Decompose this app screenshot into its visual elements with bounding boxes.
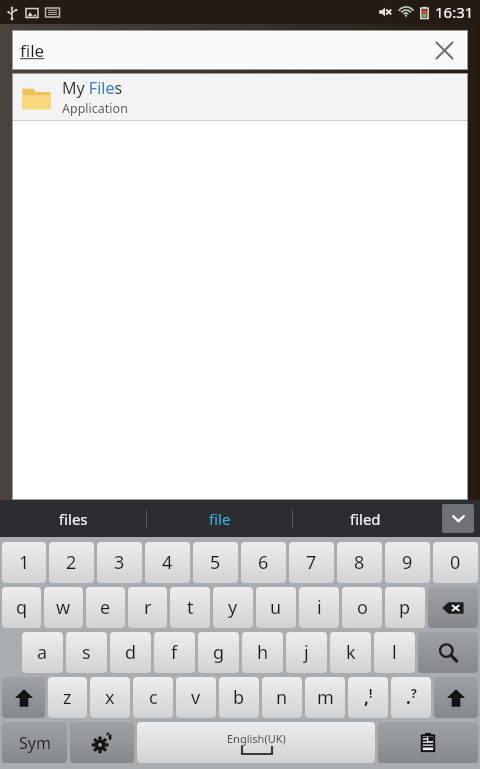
staticText: t: [187, 595, 194, 620]
staticText: m: [317, 685, 334, 710]
button[interactable]: t: [170, 585, 210, 630]
staticText: !: [369, 685, 373, 701]
staticText: o: [357, 595, 368, 620]
button[interactable]: Sym: [2, 720, 67, 765]
button[interactable]: 1: [2, 540, 46, 585]
button[interactable]: f: [154, 630, 195, 675]
staticText: 4: [162, 550, 173, 575]
staticText: w: [56, 595, 71, 620]
button[interactable]: n: [262, 675, 302, 720]
button[interactable]: x: [90, 675, 130, 720]
staticText: 9: [402, 550, 413, 575]
staticText: 7: [306, 550, 317, 575]
staticText: k: [346, 640, 356, 665]
staticText: ,: [364, 686, 369, 709]
staticText: file: [209, 509, 231, 529]
staticText: s: [82, 640, 91, 665]
button[interactable]: ,: [348, 675, 388, 720]
button[interactable]: o: [342, 585, 382, 630]
button[interactable]: 4: [145, 540, 190, 585]
staticText: z: [63, 685, 72, 710]
button[interactable]: i: [299, 585, 339, 630]
button[interactable]: Expand suggestions: [442, 504, 474, 533]
staticText: f: [171, 640, 178, 665]
staticText: ?: [411, 685, 417, 701]
button[interactable]: My Files: [13, 74, 467, 120]
button[interactable]: r: [128, 585, 167, 630]
button[interactable]: Search: [418, 630, 478, 675]
button[interactable]: 2: [49, 540, 94, 585]
staticText: a: [37, 640, 48, 665]
staticText: n: [276, 685, 288, 710]
staticText: My Files: [62, 77, 123, 99]
staticText: files: [59, 509, 88, 529]
button[interactable]: Shift: [2, 675, 45, 720]
staticText: file: [20, 39, 45, 62]
staticText: Application: [62, 100, 128, 117]
button[interactable]: z: [48, 675, 87, 720]
staticText: 0: [450, 550, 461, 575]
button[interactable]: g: [198, 630, 239, 675]
button[interactable]: a: [22, 630, 63, 675]
button[interactable]: Clipboard: [378, 720, 478, 765]
button[interactable]: file: [147, 500, 292, 537]
button[interactable]: l: [374, 630, 415, 675]
button[interactable]: y: [213, 585, 253, 630]
staticText: c: [149, 685, 158, 710]
staticText: r: [144, 595, 152, 620]
button[interactable]: c: [133, 675, 173, 720]
button[interactable]: e: [86, 585, 125, 630]
staticText: Sym: [19, 732, 51, 754]
staticText: l: [392, 640, 397, 665]
button[interactable]: English(UK): [137, 720, 375, 765]
staticText: 16:31: [435, 2, 474, 22]
staticText: h: [257, 640, 269, 665]
button[interactable]: 8: [337, 540, 382, 585]
button[interactable]: b: [219, 675, 259, 720]
button[interactable]: u: [256, 585, 296, 630]
button[interactable]: Shift: [434, 675, 478, 720]
staticText: 3: [114, 550, 125, 575]
button[interactable]: m: [305, 675, 345, 720]
staticText: g: [213, 640, 225, 665]
button[interactable]: p: [385, 585, 425, 630]
button[interactable]: 0: [433, 540, 478, 585]
button[interactable]: v: [176, 675, 216, 720]
button[interactable]: Clear search: [429, 35, 459, 65]
button[interactable]: j: [286, 630, 327, 675]
staticText: u: [270, 595, 282, 620]
button[interactable]: 6: [241, 540, 286, 585]
staticText: 8: [354, 550, 365, 575]
button[interactable]: filed: [293, 500, 438, 537]
button[interactable]: 9: [385, 540, 430, 585]
staticText: filed: [350, 509, 381, 529]
button[interactable]: q: [2, 585, 41, 630]
staticText: 5: [210, 550, 221, 575]
button[interactable]: Backspace: [428, 585, 478, 630]
staticText: d: [125, 640, 137, 665]
staticText: i: [317, 595, 322, 620]
staticText: x: [105, 685, 115, 710]
staticText: 6: [258, 550, 269, 575]
button[interactable]: file: [13, 31, 467, 69]
button[interactable]: 5: [193, 540, 238, 585]
staticText: English(UK): [227, 731, 286, 746]
button[interactable]: s: [66, 630, 107, 675]
button[interactable]: Settings: [70, 720, 134, 765]
button[interactable]: 3: [97, 540, 142, 585]
staticText: 2: [66, 550, 77, 575]
button[interactable]: 7: [289, 540, 334, 585]
button[interactable]: k: [330, 630, 371, 675]
button[interactable]: .: [391, 675, 431, 720]
staticText: 1: [19, 550, 30, 575]
staticText: e: [100, 595, 111, 620]
button[interactable]: files: [0, 500, 146, 537]
staticText: j: [304, 640, 309, 665]
staticText: v: [191, 685, 201, 710]
staticText: b: [233, 685, 245, 710]
button[interactable]: h: [242, 630, 283, 675]
button[interactable]: d: [110, 630, 151, 675]
staticText: p: [399, 595, 411, 620]
button[interactable]: w: [44, 585, 83, 630]
staticText: q: [16, 595, 28, 620]
